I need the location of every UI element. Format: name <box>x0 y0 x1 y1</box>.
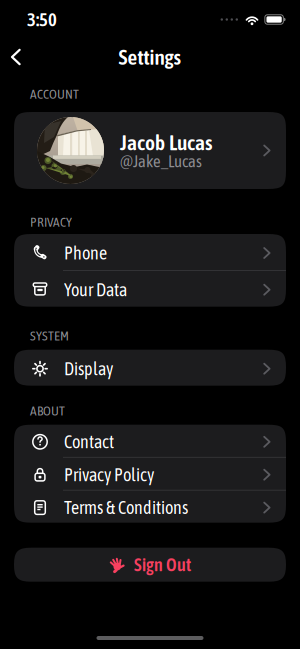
button[interactable]: Contact <box>14 425 286 457</box>
button[interactable]: Your Data <box>14 271 286 307</box>
staticText: Contact <box>64 431 114 452</box>
staticText: Privacy Policy <box>64 464 154 485</box>
staticText: SYSTEM <box>30 328 69 343</box>
button[interactable]: Back <box>0 48 22 66</box>
staticText: @Jake_Lucas <box>120 152 202 171</box>
staticText: Settings <box>118 45 181 69</box>
button[interactable]: Display <box>14 350 286 386</box>
staticText: Display <box>64 358 113 379</box>
staticText: ACCOUNT <box>30 86 79 102</box>
staticText: Your Data <box>64 279 127 300</box>
button[interactable]: Privacy Policy <box>14 458 286 490</box>
button[interactable]: Jacob Lucas <box>14 112 286 189</box>
staticText: 3:50 <box>27 9 57 30</box>
staticText: Sign Out <box>134 554 191 575</box>
button[interactable]: Terms & Conditions <box>14 490 286 523</box>
staticText: Phone <box>64 243 107 263</box>
button[interactable]: Sign Out <box>14 548 286 582</box>
staticText: Jacob Lucas <box>120 130 213 155</box>
staticText: ABOUT <box>30 403 65 418</box>
button[interactable]: Phone <box>14 234 286 270</box>
staticText: PRIVACY <box>30 214 72 230</box>
staticText: Terms & Conditions <box>64 497 188 518</box>
